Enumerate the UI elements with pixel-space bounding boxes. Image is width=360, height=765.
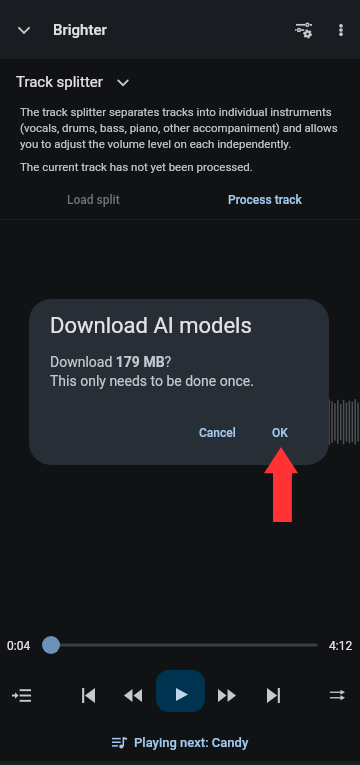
button[interactable]: Playing next: Candy <box>0 729 360 755</box>
button[interactable]: Track splitter <box>0 59 360 97</box>
staticText: The track splitter separates tracks into… <box>20 105 355 150</box>
staticText: Track splitter <box>16 73 103 91</box>
staticText: Load split <box>67 193 120 207</box>
button[interactable]: Play <box>156 670 205 712</box>
staticText: Playing next: Candy <box>134 735 249 750</box>
staticText: 4:12 <box>329 639 353 653</box>
button[interactable]: Collapse <box>0 6 48 54</box>
staticText: Process track <box>228 193 302 207</box>
button[interactable]: Fast forward <box>205 673 249 717</box>
button[interactable]: Load split <box>55 187 132 213</box>
button[interactable]: More options <box>317 6 360 54</box>
staticText: OK <box>272 426 288 440</box>
button[interactable]: Next <box>251 673 295 717</box>
staticText: Brighter <box>53 21 107 39</box>
button[interactable]: Process track <box>216 187 314 213</box>
staticText: Download AI models <box>50 313 252 339</box>
staticText: 0:04 <box>7 639 31 653</box>
staticText: The current track has not yet been proce… <box>20 160 253 173</box>
button[interactable]: Queue <box>0 673 43 717</box>
staticText: Download 179 MB? This only needs to be d… <box>50 354 254 389</box>
button[interactable]: Equalizer settings <box>279 6 327 54</box>
button[interactable]: Cancel <box>188 419 247 447</box>
staticText: Cancel <box>199 426 236 440</box>
button[interactable]: Previous <box>66 673 110 717</box>
button[interactable]: Shuffle <box>315 673 359 717</box>
button[interactable]: Rewind <box>111 673 155 717</box>
button[interactable]: OK <box>261 419 299 447</box>
